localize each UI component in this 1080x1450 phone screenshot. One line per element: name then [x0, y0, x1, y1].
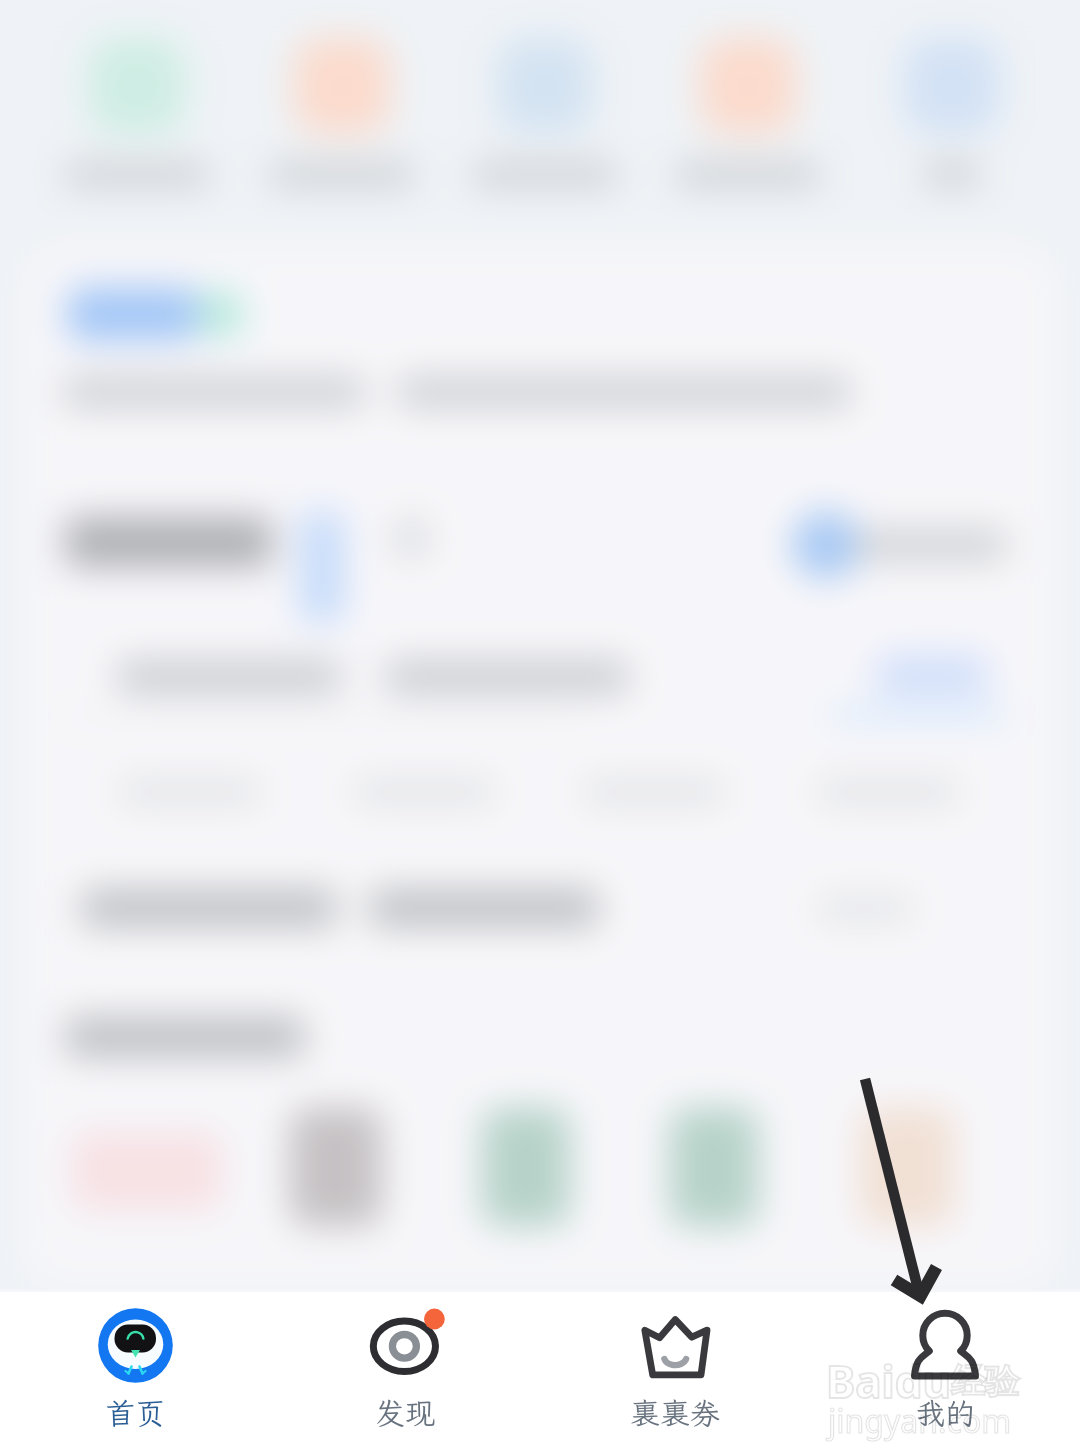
staticText: jingyan.com	[828, 1399, 1012, 1443]
other: Home	[98, 1308, 173, 1383]
other: Discover	[368, 1308, 443, 1383]
other: Coupons	[638, 1308, 713, 1383]
button[interactable]: Profile	[810, 1292, 1080, 1433]
staticText: 经验	[951, 1360, 1019, 1403]
other: Profile	[908, 1308, 983, 1383]
staticText: 我的	[915, 1393, 975, 1433]
button[interactable]: Coupons	[540, 1292, 810, 1433]
staticText: Baidu	[826, 1351, 952, 1411]
button[interactable]: Discover	[270, 1292, 540, 1433]
staticText: 裏裏券	[630, 1393, 720, 1433]
staticText: 首页	[105, 1393, 165, 1433]
button[interactable]: Home	[0, 1292, 270, 1433]
staticText: 发现	[375, 1393, 435, 1433]
